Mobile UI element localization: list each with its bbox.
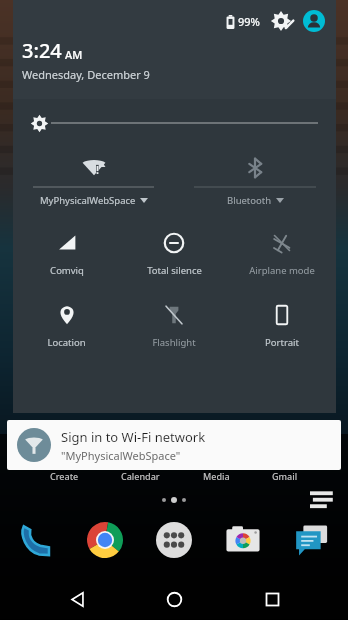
button[interactable]: User (302, 9, 326, 33)
other: Feed (310, 487, 334, 511)
button[interactable]: Recents (251, 578, 293, 620)
staticText: Create (50, 470, 79, 482)
staticText: Portrait (265, 336, 299, 349)
button[interactable]: Portrait (228, 301, 336, 351)
staticText: Wednesday, December 9 (22, 67, 150, 82)
button[interactable]: Messages (290, 518, 334, 562)
staticText: AM (65, 47, 83, 62)
button[interactable]: Settings (269, 9, 293, 33)
button[interactable]: All apps (152, 518, 196, 562)
button[interactable]: Comviq (13, 229, 120, 279)
staticText: Total silence (147, 264, 202, 277)
staticText: Gmail (272, 470, 298, 482)
staticText: Calendar (121, 470, 160, 482)
staticText: MyPhysicalWebSpace (40, 194, 136, 207)
button[interactable]: Total silence (120, 229, 228, 279)
staticText: Flashlight (152, 336, 196, 349)
button[interactable]: Phone (14, 518, 58, 562)
staticText: 3:24 (22, 37, 62, 64)
button[interactable]: Bluetooth (174, 155, 336, 207)
staticText: Location (47, 336, 86, 349)
button[interactable]: Sign in to Wi-Fi network (7, 420, 341, 470)
button[interactable]: Flashlight (120, 301, 228, 351)
button[interactable]: Wi-Fi (13, 155, 174, 207)
button[interactable]: Location (13, 301, 120, 351)
staticText: Media (203, 470, 230, 482)
staticText: Bluetooth (227, 194, 272, 207)
staticText: 99% (238, 14, 260, 29)
button[interactable]: Home (153, 578, 195, 620)
staticText: "MyPhysicalWebSpace" (61, 448, 181, 463)
button[interactable]: Back (56, 578, 98, 620)
staticText: Sign in to Wi-Fi network (61, 428, 206, 446)
staticText: Airplane mode (249, 264, 315, 277)
button[interactable]: Chrome (83, 518, 127, 562)
button[interactable]: Camera (221, 518, 265, 562)
staticText: Comviq (50, 264, 84, 277)
button[interactable]: Brightness (13, 105, 336, 141)
button[interactable]: Airplane mode (228, 229, 336, 279)
